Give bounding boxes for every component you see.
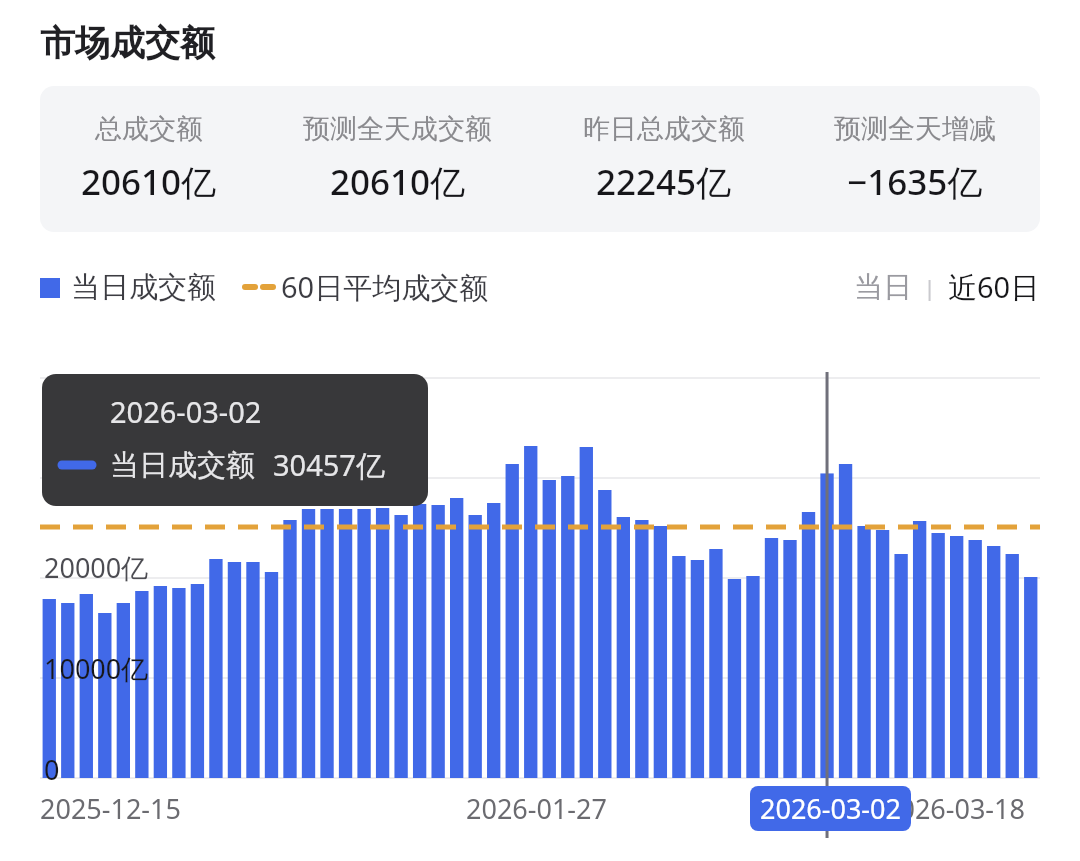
- staticText: −1635亿: [847, 158, 983, 206]
- staticText: 预测全天成交额: [303, 112, 492, 146]
- staticText: 60日平均成交额: [281, 267, 489, 307]
- staticText: 当日: [854, 269, 912, 306]
- button[interactable]: 昨日总成交额: [538, 112, 789, 206]
- staticText: 20610亿: [81, 158, 217, 206]
- staticText: 20000亿: [44, 549, 149, 586]
- button[interactable]: 当日: [854, 269, 912, 306]
- button[interactable]: 预测全天增减: [789, 112, 1040, 206]
- button[interactable]: 2026-03-02: [750, 786, 911, 831]
- button[interactable]: 60日平均成交额: [244, 267, 489, 307]
- staticText: 当日成交额: [110, 447, 255, 484]
- staticText: 总成交额: [95, 112, 203, 146]
- button[interactable]: 当日成交额: [40, 269, 216, 306]
- button[interactable]: 总成交额: [40, 86, 1040, 232]
- staticText: 0: [44, 751, 60, 788]
- staticText: |: [912, 272, 948, 302]
- staticText: 2026-03-02: [760, 790, 901, 827]
- staticText: 近60日: [948, 267, 1040, 307]
- staticText: 2026-03-18: [884, 790, 1025, 827]
- staticText: 20610亿: [330, 158, 466, 206]
- button[interactable]: 近60日: [948, 267, 1040, 307]
- staticText: 2026-03-02: [110, 392, 262, 431]
- staticText: 市场成交额: [40, 21, 215, 65]
- staticText: 10000亿: [44, 650, 149, 687]
- staticText: 2025-12-15: [40, 790, 181, 827]
- staticText: 22245亿: [596, 158, 732, 206]
- staticText: 昨日总成交额: [583, 112, 745, 146]
- button[interactable]: 总成交额: [40, 112, 257, 206]
- staticText: 30457亿: [273, 445, 385, 485]
- button[interactable]: 2026-03-02: [42, 374, 428, 506]
- button[interactable]: 预测全天成交额: [257, 112, 538, 206]
- staticText: 2026-01-27: [466, 790, 607, 827]
- staticText: 当日成交额: [71, 269, 216, 306]
- staticText: 预测全天增减: [834, 112, 996, 146]
